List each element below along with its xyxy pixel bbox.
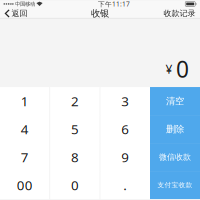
staticText: 中国移动 xyxy=(15,1,35,7)
staticText: 收款记录 xyxy=(163,8,195,18)
button[interactable]: 收款记录 xyxy=(159,8,200,19)
staticText: 清空 xyxy=(166,95,184,107)
staticText: . xyxy=(123,176,127,194)
staticText: 8 xyxy=(71,148,79,166)
staticText: 7 xyxy=(21,148,29,166)
button[interactable]: 00 xyxy=(0,171,50,199)
button[interactable]: 1 xyxy=(0,87,50,115)
staticText: 2 xyxy=(71,92,79,110)
staticText: 支付宝收款 xyxy=(157,181,192,189)
button[interactable]: 9 xyxy=(100,143,150,171)
staticText: 00 xyxy=(17,176,33,194)
button[interactable]: 3 xyxy=(100,87,150,115)
staticText: 3 xyxy=(121,92,129,110)
button[interactable]: 4 xyxy=(0,115,50,143)
button[interactable]: 8 xyxy=(50,143,100,171)
staticText: 删除 xyxy=(166,123,184,135)
button[interactable]: 7 xyxy=(0,143,50,171)
button[interactable]: 0 xyxy=(50,171,100,199)
button[interactable]: . xyxy=(100,171,150,199)
button[interactable]: 删除 xyxy=(150,115,200,143)
button[interactable]: 6 xyxy=(100,115,150,143)
staticText: 6 xyxy=(121,120,129,138)
staticText: 下午11:17 xyxy=(98,0,130,8)
staticText: 返回 xyxy=(12,8,28,18)
staticText: 9 xyxy=(121,148,129,166)
staticText: 4 xyxy=(21,120,29,138)
button[interactable]: 清空 xyxy=(150,87,200,115)
button[interactable]: 微信收款 xyxy=(150,143,200,171)
staticText: ¥ xyxy=(165,61,172,77)
button[interactable]: 5 xyxy=(50,115,100,143)
staticText: 0 xyxy=(71,176,79,194)
button[interactable]: 支付宝收款 xyxy=(150,171,200,199)
staticText: 微信收款 xyxy=(159,152,191,162)
staticText: 1 xyxy=(21,92,29,110)
staticText: 5 xyxy=(71,120,79,138)
button[interactable]: 2 xyxy=(50,87,100,115)
button[interactable]: 返回 xyxy=(0,8,33,19)
staticText: 0 xyxy=(176,54,189,84)
staticText: 收银 xyxy=(91,8,109,19)
